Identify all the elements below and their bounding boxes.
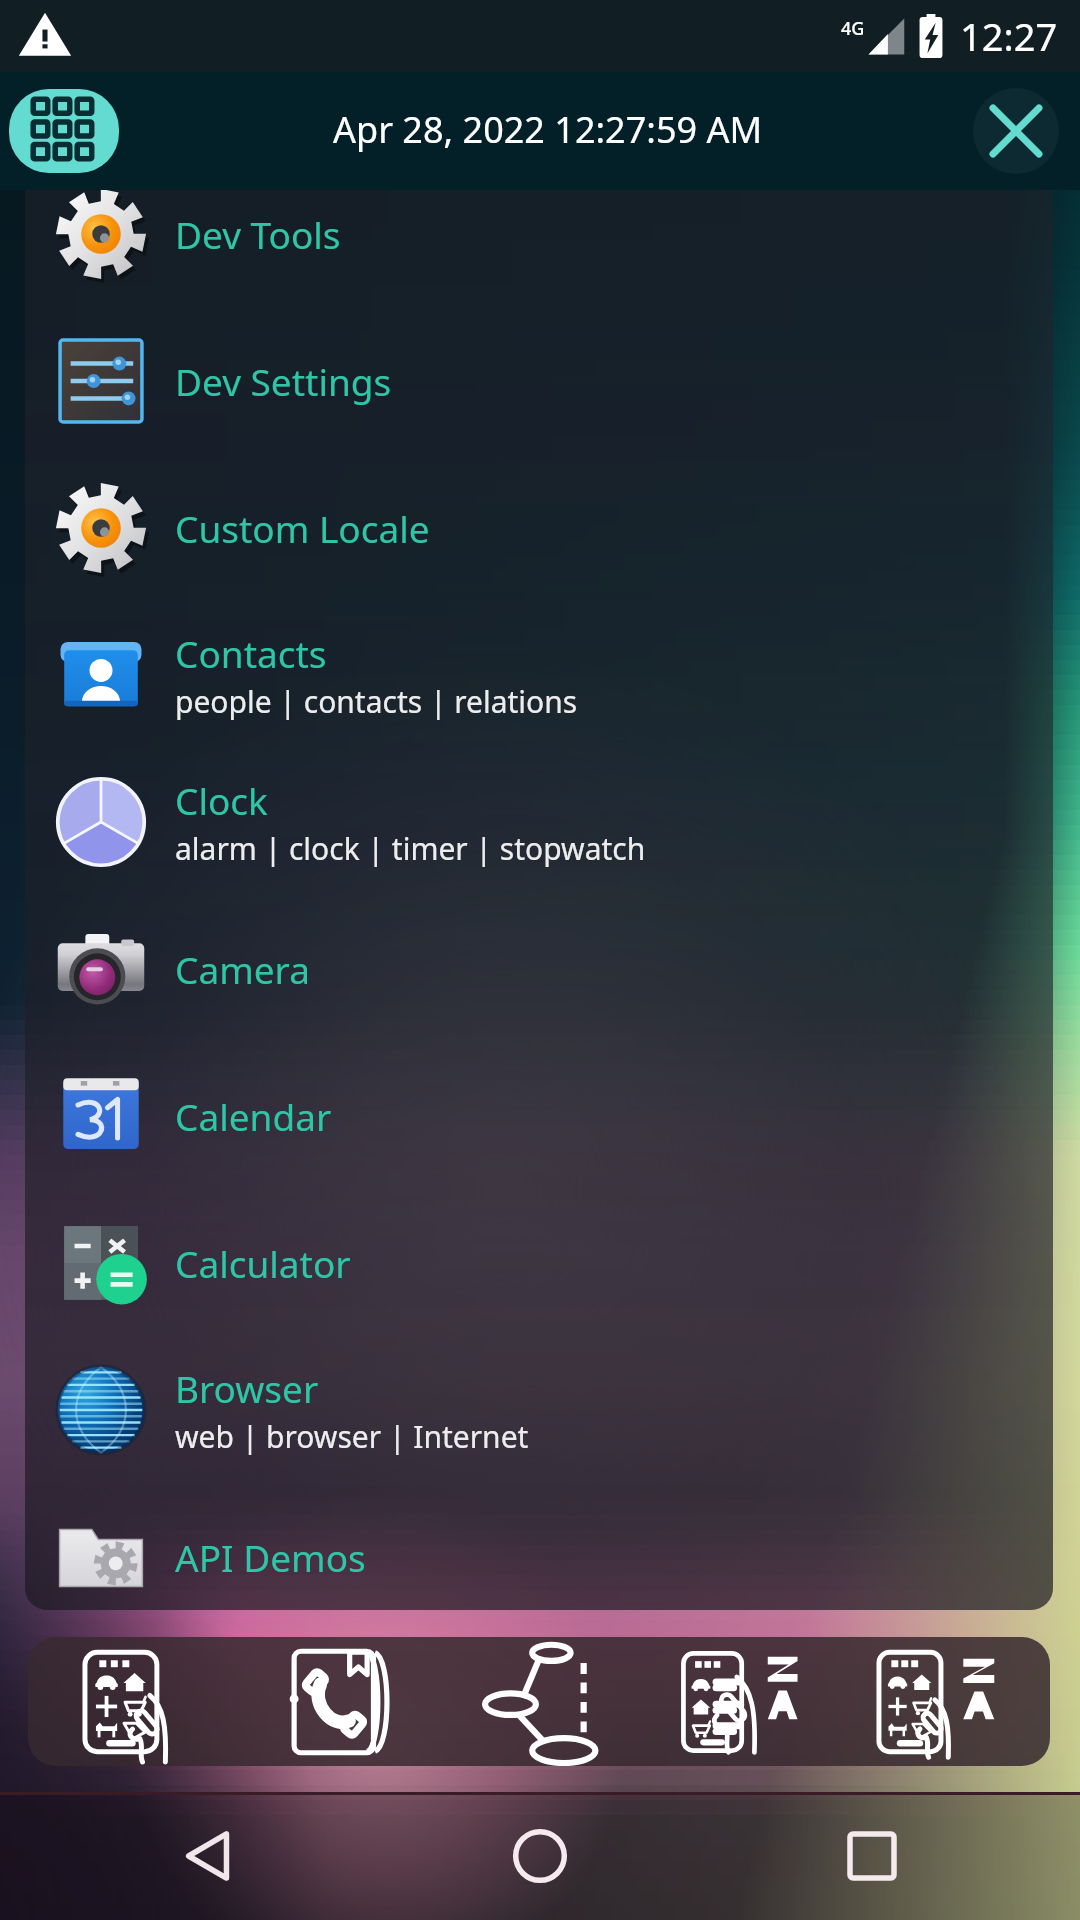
button[interactable]: Clock: [25, 748, 1053, 895]
button[interactable]: Camera: [25, 895, 1053, 1042]
button[interactable]: Calculator: [25, 1189, 1053, 1336]
staticText: 4G: [841, 16, 865, 41]
button[interactable]: Contacts: [25, 601, 1053, 748]
staticText: Calendar: [175, 1091, 332, 1141]
staticText: web | browser | Internet: [175, 1416, 529, 1457]
staticText: Custom Locale: [175, 503, 430, 553]
staticText: Contacts: [175, 628, 327, 678]
button[interactable]: API Demos: [25, 1483, 1053, 1610]
staticText: alarm | clock | timer | stopwatch: [175, 828, 646, 869]
staticText: Dev Tools: [175, 209, 341, 259]
button[interactable]: App graph: [454, 1642, 624, 1762]
button[interactable]: Close: [973, 88, 1059, 174]
button[interactable]: Browse apps: [57, 1642, 227, 1762]
staticText: Dev Settings: [175, 356, 392, 406]
button[interactable]: Dev Tools: [25, 190, 1053, 307]
staticText: people | contacts | relations: [175, 681, 578, 722]
button[interactable]: Sort widgets A to Z: [851, 1642, 1021, 1762]
staticText: Calculator: [175, 1238, 351, 1288]
staticText: Clock: [175, 775, 268, 825]
button[interactable]: Back: [118, 1792, 298, 1920]
button[interactable]: Custom Locale: [25, 454, 1053, 601]
staticText: Camera: [175, 944, 310, 994]
button[interactable]: All apps: [9, 89, 119, 173]
staticText: API Demos: [175, 1532, 366, 1582]
staticText: Browser: [175, 1363, 319, 1413]
button[interactable]: Recents: [782, 1792, 962, 1920]
button[interactable]: Home: [450, 1792, 630, 1920]
button[interactable]: Dev Settings: [25, 307, 1053, 454]
button[interactable]: Contacts: [255, 1642, 425, 1762]
staticText: Apr 28, 2022 12:27:59 AM: [333, 105, 763, 154]
button[interactable]: Sort apps A to Z: [653, 1642, 823, 1762]
button[interactable]: Browser: [25, 1336, 1053, 1483]
button[interactable]: Calendar: [25, 1042, 1053, 1189]
staticText: 12:27: [960, 10, 1058, 62]
